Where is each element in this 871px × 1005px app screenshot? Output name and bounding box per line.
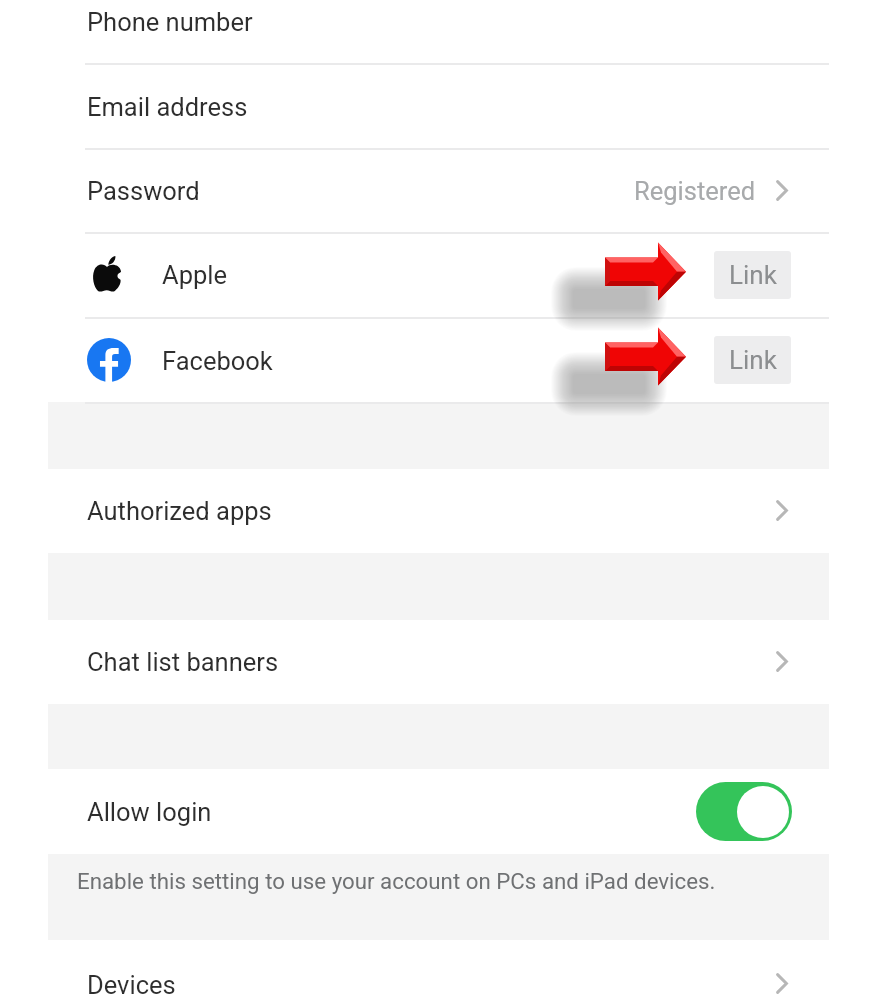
button[interactable]: Allow login — [0, 769, 871, 854]
staticText: Link — [729, 345, 777, 375]
other: Facebook — [87, 338, 131, 382]
staticText: Devices — [87, 970, 176, 1000]
button[interactable]: Phone number — [0, 0, 871, 64]
staticText: Email address — [87, 92, 248, 122]
staticText: Facebook — [162, 346, 273, 376]
button[interactable]: Devices — [0, 939, 871, 1005]
other: Apple — [93, 256, 121, 292]
staticText: Apple — [162, 260, 227, 290]
button[interactable]: Allow login, on — [696, 782, 792, 841]
button[interactable]: Link — [714, 251, 791, 299]
button[interactable]: Facebook — [0, 318, 871, 402]
staticText: Chat list banners — [87, 647, 279, 677]
staticText: Authorized apps — [87, 496, 272, 526]
button[interactable]: Apple — [0, 232, 871, 318]
button[interactable]: Password — [0, 148, 871, 232]
staticText: Allow login — [87, 797, 212, 827]
staticText: Enable this setting to use your account … — [77, 868, 716, 894]
staticText: Password — [87, 176, 200, 206]
staticText: Phone number — [87, 7, 253, 37]
button[interactable]: Authorized apps — [0, 468, 871, 553]
button[interactable]: Chat list banners — [0, 620, 871, 704]
staticText: Registered — [634, 176, 756, 206]
staticText: Link — [729, 260, 777, 290]
button[interactable]: Link — [714, 336, 791, 384]
button[interactable]: Email address — [0, 64, 871, 148]
